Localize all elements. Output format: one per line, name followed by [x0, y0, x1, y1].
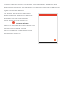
staticText: aliquip ex ea commodo conseq — [4, 17, 32, 20]
button[interactable] — [38, 13, 58, 44]
staticText: proident sunt in — [4, 32, 22, 35]
staticText: exercitation ullamco laboris nisi ut — [4, 14, 34, 17]
staticText: dolore eu fugiat nulla pariatur — [4, 27, 34, 30]
staticText: Ut enim ad minim veniam quis nostru — [4, 12, 35, 15]
staticText: eiusmod tempor incididunt ut labore dolo… — [4, 6, 60, 9]
staticText: sint occaecat cupidatat non — [4, 29, 33, 32]
staticText: Quis nostrud exerci — [4, 9, 24, 12]
staticText: Lorem ipsum dolor sit amet consectetur a… — [4, 3, 61, 6]
staticText: duis aute irure dolor in reprehen — [4, 19, 34, 22]
staticText: derit in voluptate velit esse cill — [4, 24, 35, 27]
staticText: Application name — [16, 22, 33, 25]
